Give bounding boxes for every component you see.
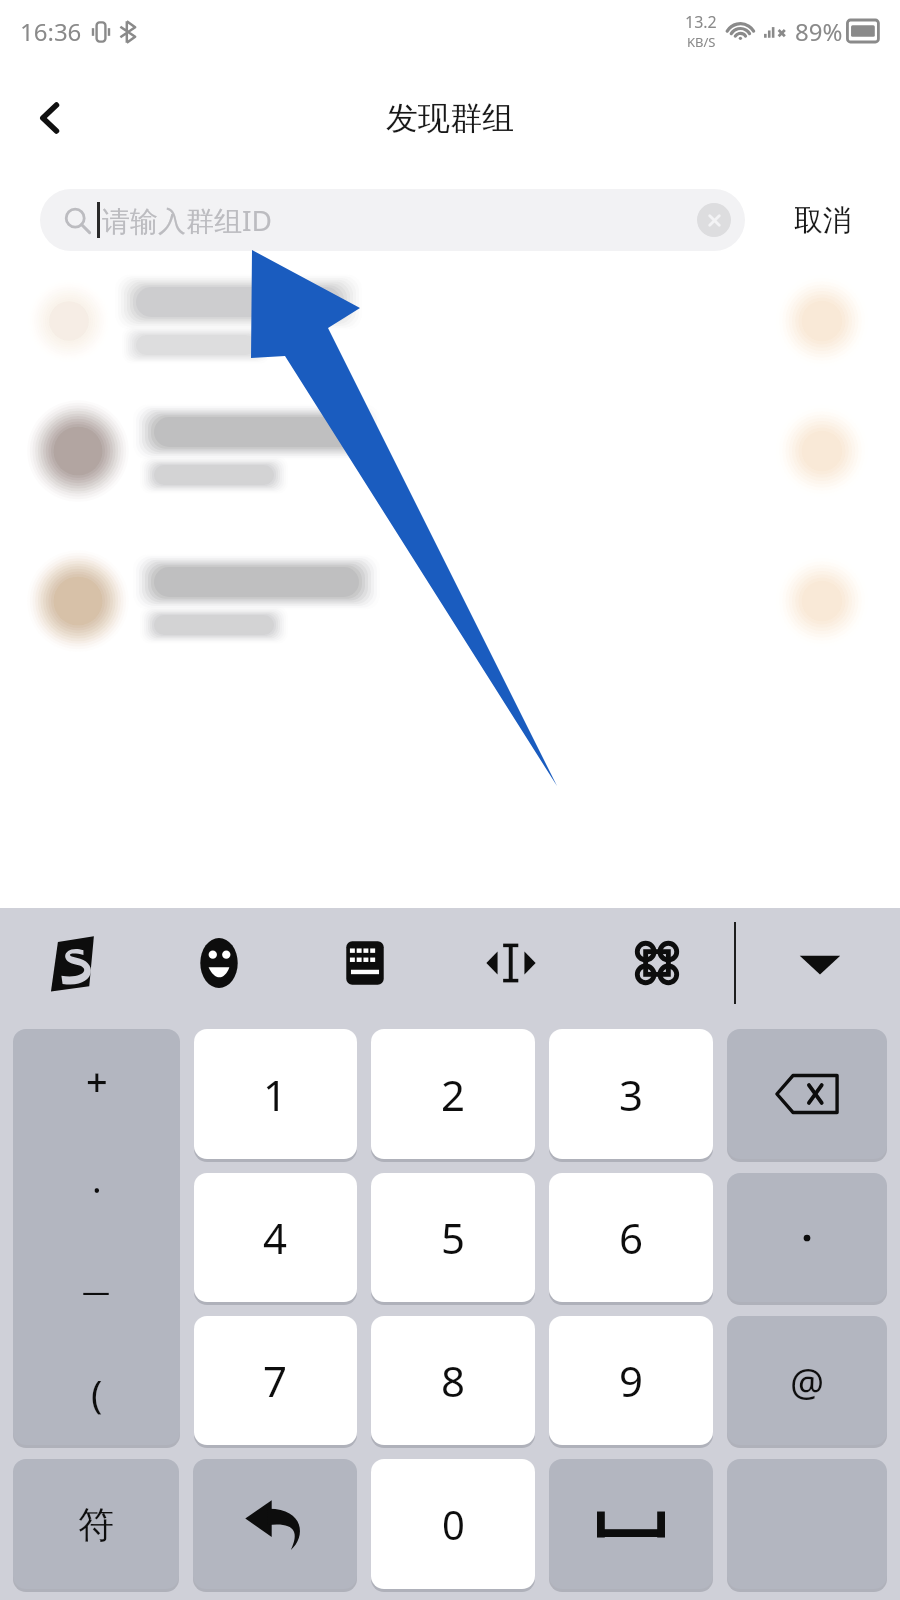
staticText: 2 — [441, 1066, 466, 1123]
button[interactable]: 1 — [194, 1029, 357, 1159]
button[interactable]: Symbols plus minus — [13, 1029, 180, 1445]
staticText: 4 — [263, 1209, 288, 1266]
button[interactable]: 3 — [549, 1029, 713, 1159]
button[interactable]: 取消 — [745, 189, 900, 251]
button[interactable]: 请输入群组ID — [40, 189, 745, 251]
staticText: 9 — [619, 1352, 644, 1409]
button[interactable]: Clear text — [697, 203, 731, 237]
button[interactable]: Emoji — [146, 908, 292, 1018]
button[interactable]: 6 — [549, 1173, 713, 1302]
staticText: 0 — [442, 1497, 465, 1551]
button[interactable]: Hide keyboard — [740, 908, 900, 1018]
button[interactable]: Period — [727, 1173, 887, 1302]
staticText: 16:36 — [20, 15, 82, 48]
button[interactable]: 符 — [13, 1459, 179, 1589]
staticText: 取消 — [794, 202, 852, 239]
button[interactable]: Move cursor — [438, 908, 584, 1018]
staticText: @ — [790, 1355, 825, 1407]
staticText: + — [86, 1055, 108, 1107]
button[interactable]: 9 — [549, 1316, 713, 1445]
staticText: 7 — [263, 1352, 288, 1409]
button[interactable]: Space — [549, 1459, 713, 1589]
button[interactable]: Keyboard layout — [292, 908, 438, 1018]
staticText: 5 — [441, 1209, 466, 1266]
button[interactable]: Back — [12, 80, 88, 156]
staticText: 请输入群组ID — [102, 201, 272, 239]
button[interactable]: 4 — [194, 1173, 357, 1302]
button[interactable]: 0 — [371, 1459, 535, 1589]
button[interactable]: Backspace — [727, 1029, 887, 1159]
button[interactable]: 5 — [371, 1173, 535, 1302]
button[interactable]: More functions — [584, 908, 730, 1018]
staticText: · — [92, 1165, 102, 1214]
button[interactable]: 7 — [194, 1316, 357, 1445]
staticText: KB/S — [687, 33, 716, 51]
button[interactable]: Return — [193, 1459, 357, 1589]
staticText: 3 — [619, 1066, 644, 1123]
staticText: 1 — [263, 1066, 288, 1123]
staticText: 89% — [795, 15, 843, 48]
staticText: 8 — [441, 1352, 466, 1409]
staticText: 13.2 — [685, 11, 717, 33]
staticText: — — [82, 1271, 111, 1309]
staticText: 发现群组 — [386, 98, 514, 138]
staticText: 符 — [78, 1502, 114, 1547]
button[interactable]: 8 — [371, 1316, 535, 1445]
staticText: 6 — [619, 1209, 644, 1266]
staticText: ( — [91, 1367, 103, 1419]
button[interactable]: 2 — [371, 1029, 535, 1159]
button[interactable]: Sogou input — [0, 908, 146, 1018]
button[interactable]: At sign — [727, 1316, 887, 1445]
